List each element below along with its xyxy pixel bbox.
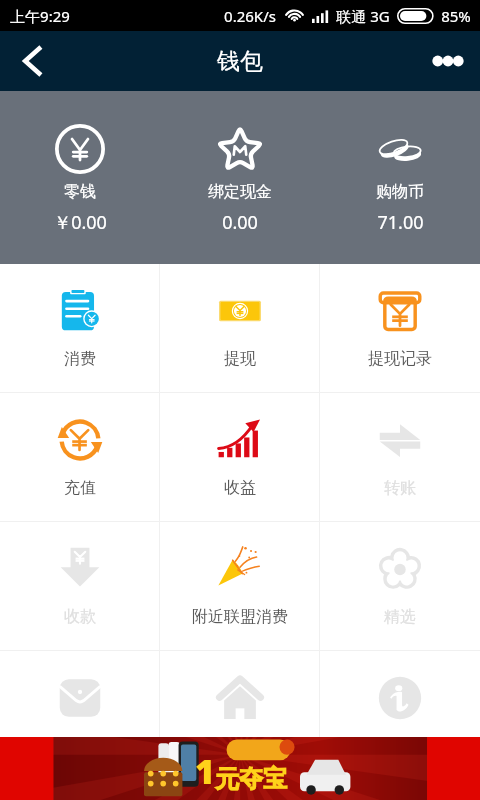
button[interactable]: 提现记录 bbox=[320, 264, 480, 392]
staticText: 帮助 bbox=[384, 736, 416, 756]
staticText: 购物币 bbox=[376, 182, 424, 202]
button[interactable]: 精选 bbox=[320, 522, 480, 650]
button[interactable]: Advertisement banner bbox=[0, 737, 480, 800]
button[interactable]: Back bbox=[0, 31, 64, 91]
staticText: 绑定现金 bbox=[208, 182, 272, 202]
staticText: 精选 bbox=[384, 607, 416, 627]
staticText: 71.00 bbox=[377, 210, 424, 235]
button[interactable]: 绑定现金 bbox=[160, 91, 320, 264]
staticText: 上午9:29 bbox=[10, 6, 70, 26]
staticText: 收款 bbox=[64, 607, 96, 627]
button[interactable]: 收款 bbox=[0, 522, 160, 650]
staticText: 1 bbox=[195, 748, 215, 794]
button[interactable]: 便民服务 bbox=[160, 651, 320, 779]
button[interactable]: 充值 bbox=[0, 393, 160, 521]
staticText: 转账 bbox=[384, 478, 416, 498]
button[interactable]: 转账 bbox=[320, 393, 480, 521]
staticText: 零钱 bbox=[64, 182, 96, 202]
staticText: 元夺宝 bbox=[215, 764, 287, 794]
staticText: 信件 bbox=[64, 736, 96, 756]
staticText: 联通 3G bbox=[336, 6, 390, 26]
button[interactable]: 信件 bbox=[0, 651, 160, 779]
button[interactable]: 购物币 bbox=[320, 91, 480, 264]
staticText: 便民服务 bbox=[208, 736, 272, 756]
button[interactable]: 消费 bbox=[0, 264, 160, 392]
staticText: 0.00 bbox=[222, 210, 258, 235]
staticText: 充值 bbox=[64, 478, 96, 498]
button[interactable]: 零钱 bbox=[0, 91, 160, 264]
staticText: 提现 bbox=[224, 349, 256, 369]
button[interactable]: 附近联盟消费 bbox=[160, 522, 320, 650]
staticText: 消费 bbox=[64, 349, 96, 369]
button[interactable]: More options bbox=[416, 31, 480, 91]
staticText: ￥0.00 bbox=[53, 210, 107, 235]
button[interactable]: 帮助 bbox=[320, 651, 480, 779]
staticText: 85% bbox=[441, 6, 471, 26]
button[interactable]: 收益 bbox=[160, 393, 320, 521]
staticText: 0.26K/s bbox=[224, 6, 276, 26]
button[interactable]: 提现 bbox=[160, 264, 320, 392]
staticText: 提现记录 bbox=[368, 349, 432, 369]
staticText: 钱包 bbox=[217, 47, 263, 76]
staticText: 附近联盟消费 bbox=[192, 607, 288, 627]
staticText: 收益 bbox=[224, 478, 256, 498]
